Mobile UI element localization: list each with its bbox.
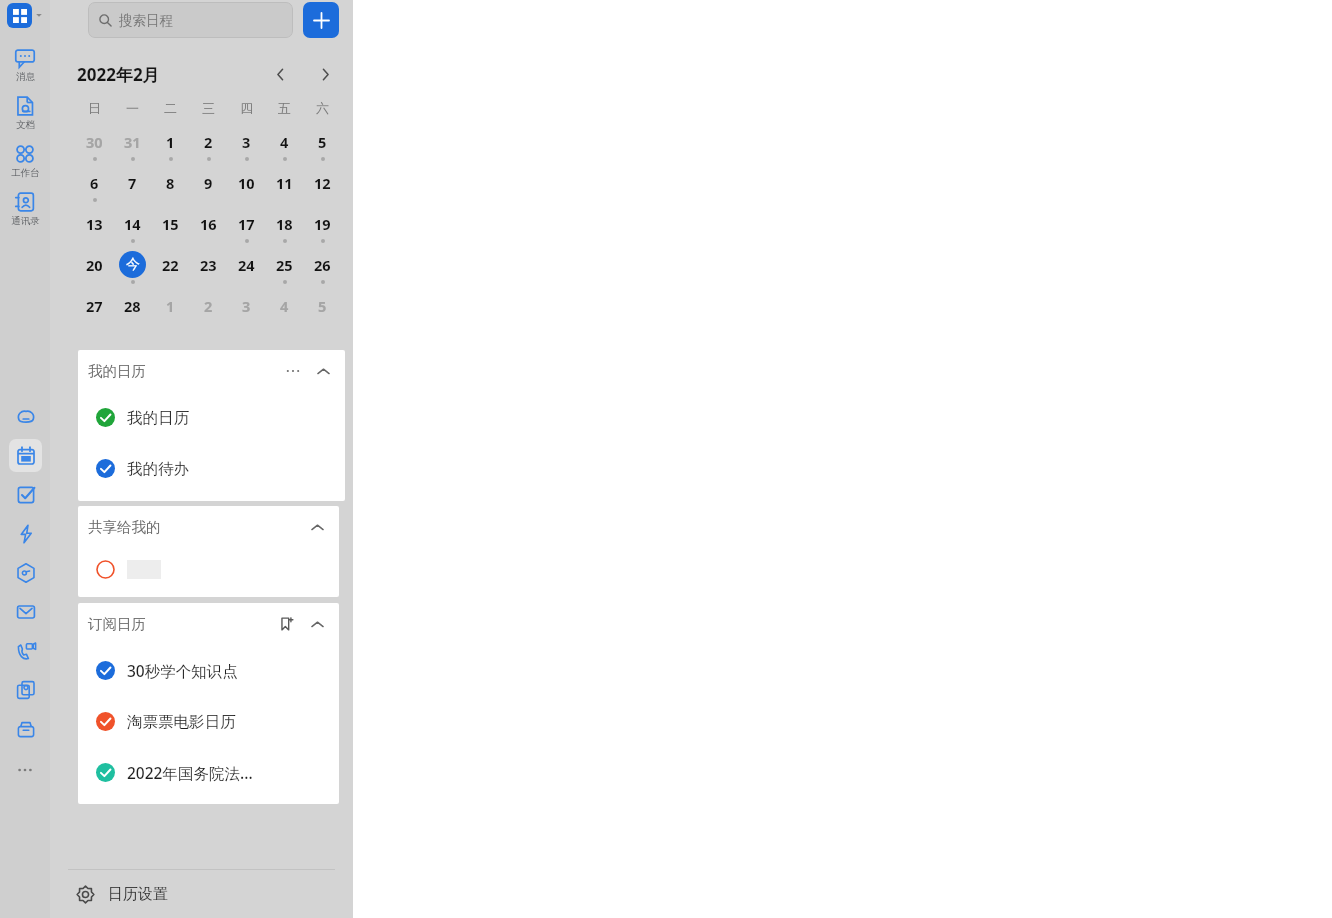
button[interactable]: 2	[189, 128, 227, 169]
button[interactable]: 今	[113, 251, 151, 292]
button[interactable]: 文档	[0, 95, 50, 143]
button[interactable]: 折叠	[313, 361, 333, 381]
button[interactable]: 任务	[9, 478, 42, 511]
staticText: 4	[280, 296, 289, 316]
staticText: 消息	[16, 71, 35, 83]
button[interactable]: 18	[265, 210, 303, 251]
button[interactable]: 12	[303, 169, 341, 210]
button[interactable]: 6	[75, 169, 113, 210]
button[interactable]: 我的日历	[78, 350, 345, 392]
button[interactable]: 8	[151, 169, 189, 210]
staticText: 12	[314, 173, 331, 193]
button[interactable]: 28	[113, 292, 151, 333]
button[interactable]: 日历设置	[50, 870, 353, 918]
staticText: 五	[278, 100, 291, 116]
button[interactable]: 下个月	[311, 60, 339, 88]
staticText: 四	[240, 100, 253, 116]
button[interactable]: 订阅日历	[78, 603, 339, 645]
staticText: 28	[124, 296, 141, 316]
button[interactable]: 闪电	[9, 517, 42, 550]
button[interactable]: 15	[151, 210, 189, 251]
staticText: 3	[242, 132, 251, 152]
button[interactable]: 10	[227, 169, 265, 210]
staticText: 我的日历	[88, 362, 146, 380]
button[interactable]: 折叠	[307, 517, 327, 537]
staticText: 19	[314, 214, 331, 234]
button[interactable]: 复制	[9, 673, 42, 706]
staticText: 25	[276, 255, 293, 275]
button[interactable]: 5	[303, 292, 341, 333]
button[interactable]: 25	[265, 251, 303, 292]
button[interactable]	[78, 548, 339, 590]
button[interactable]: 14	[113, 210, 151, 251]
staticText: 今	[126, 256, 140, 274]
staticText: 18	[276, 214, 293, 234]
button[interactable]: 17	[227, 210, 265, 251]
button[interactable]: 3	[227, 292, 265, 333]
button[interactable]: 11	[265, 169, 303, 210]
staticText: 27	[86, 296, 103, 316]
button[interactable]: 23	[189, 251, 227, 292]
button[interactable]: 9	[189, 169, 227, 210]
button[interactable]: 新建日程	[303, 2, 339, 38]
button[interactable]: 日历	[9, 439, 42, 472]
staticText: 26	[314, 255, 331, 275]
button[interactable]: 搜索日程	[88, 2, 293, 38]
staticText: 15	[162, 214, 179, 234]
staticText: 8	[166, 173, 175, 193]
button[interactable]: 1	[151, 292, 189, 333]
staticText: 14	[124, 214, 141, 234]
button[interactable]: 19	[303, 210, 341, 251]
button[interactable]: 更多操作	[283, 361, 303, 381]
button[interactable]: 4	[265, 128, 303, 169]
button[interactable]: 归档	[9, 712, 42, 745]
button[interactable]: 27	[75, 292, 113, 333]
staticText: 通讯录	[11, 215, 40, 227]
button[interactable]: 应用	[7, 1, 43, 29]
staticText: 1	[166, 296, 175, 316]
staticText: 6	[90, 173, 99, 193]
button[interactable]: 2	[189, 292, 227, 333]
button[interactable]: 添加订阅	[277, 614, 297, 634]
button[interactable]: 云文档	[9, 400, 42, 433]
staticText: 2022年国务院法...	[127, 762, 253, 783]
button[interactable]: 1	[151, 128, 189, 169]
button[interactable]: 22	[151, 251, 189, 292]
button[interactable]: 折叠	[307, 614, 327, 634]
button[interactable]: 淘票票电影日历	[78, 696, 339, 747]
staticText: 4	[280, 132, 289, 152]
button[interactable]: 31	[113, 128, 151, 169]
staticText: 共享给我的	[88, 518, 161, 536]
button[interactable]: 消息	[0, 47, 50, 95]
button[interactable]: 邮件	[9, 595, 42, 628]
button[interactable]: 20	[75, 251, 113, 292]
staticText: 3	[242, 296, 251, 316]
button[interactable]: 30秒学个知识点	[78, 645, 339, 696]
button[interactable]: 16	[189, 210, 227, 251]
button[interactable]: 5	[303, 128, 341, 169]
staticText: 13	[86, 214, 103, 234]
button[interactable]: 30	[75, 128, 113, 169]
button[interactable]: 3	[227, 128, 265, 169]
staticText: 2	[204, 132, 213, 152]
button[interactable]: 共享给我的	[78, 506, 339, 548]
button[interactable]: 工作台	[0, 143, 50, 191]
button[interactable]: 电话	[9, 634, 42, 667]
staticText: 六	[316, 100, 329, 116]
button[interactable]: 26	[303, 251, 341, 292]
button[interactable]: 7	[113, 169, 151, 210]
button[interactable]: 上个月	[266, 60, 294, 88]
button[interactable]: 2022年国务院法...	[78, 747, 339, 798]
staticText: 31	[124, 132, 141, 152]
staticText: 16	[200, 214, 217, 234]
button[interactable]: 24	[227, 251, 265, 292]
button[interactable]: 4	[265, 292, 303, 333]
button[interactable]: 应用集	[9, 556, 42, 589]
button[interactable]: 我的日历	[78, 392, 345, 443]
button[interactable]: 我的待办	[78, 443, 345, 494]
staticText: 22	[162, 255, 179, 275]
button[interactable]: 更多	[7, 752, 43, 788]
staticText: 30秒学个知识点	[127, 660, 238, 681]
button[interactable]: 通讯录	[0, 191, 50, 239]
button[interactable]: 13	[75, 210, 113, 251]
